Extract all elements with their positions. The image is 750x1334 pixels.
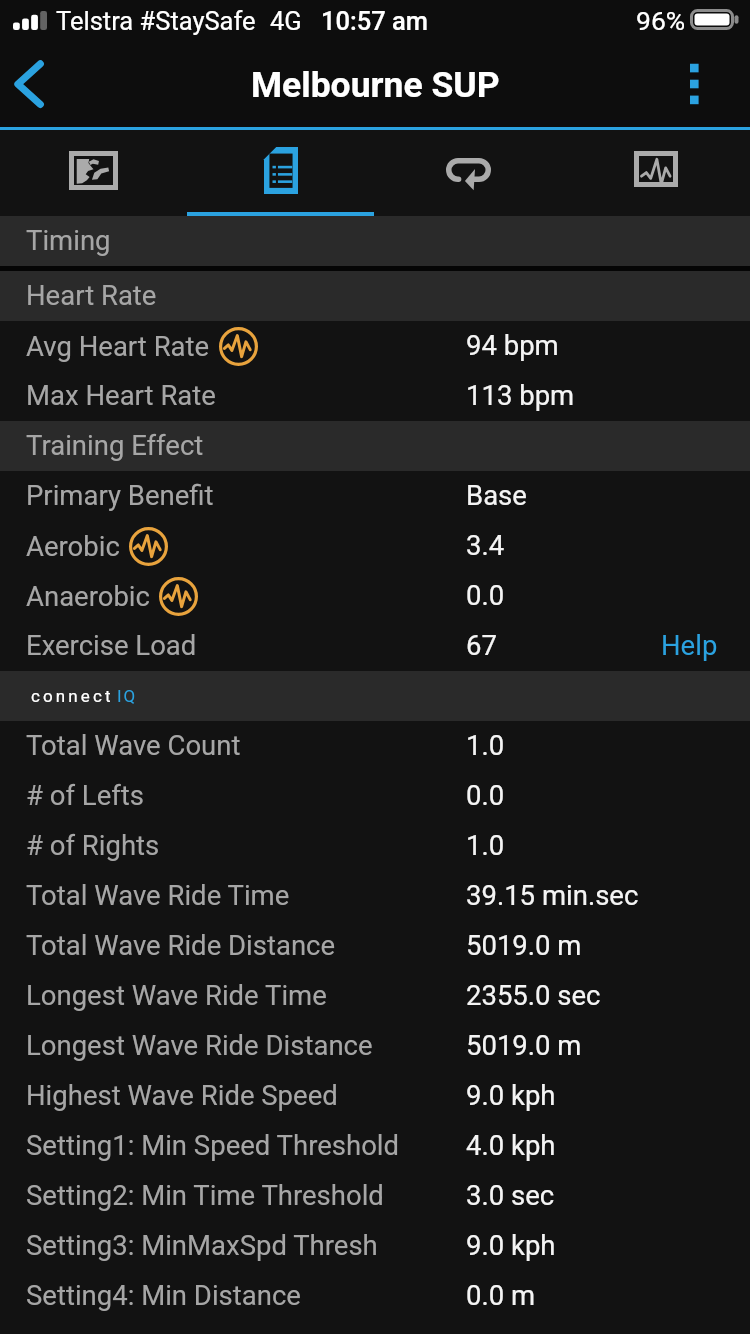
- button[interactable]: More options: [688, 50, 750, 127]
- staticText: Timing: [26, 224, 111, 256]
- staticText: Total Wave Count: [26, 729, 241, 761]
- staticText: Total Wave Ride Distance: [26, 929, 336, 961]
- staticText: Training Effect: [26, 429, 204, 461]
- button[interactable]: Primary Benefit: [0, 471, 750, 521]
- staticText: Aerobic: [26, 530, 120, 562]
- staticText: Exercise Load: [26, 629, 197, 661]
- button[interactable]: Aerobic: [0, 521, 750, 571]
- button[interactable]: # of Rights: [0, 821, 750, 871]
- staticText: 113 bpm: [466, 379, 575, 411]
- staticText: 9.0 kph: [466, 1229, 556, 1261]
- staticText: 67: [466, 629, 497, 661]
- staticText: Help: [661, 629, 718, 661]
- staticText: 5019.0 m: [466, 929, 582, 961]
- staticText: 4.0 kph: [466, 1129, 556, 1161]
- staticText: 3.4: [466, 529, 505, 561]
- button[interactable]: Max Heart Rate: [0, 371, 750, 421]
- button[interactable]: Longest Wave Ride Time: [0, 971, 750, 1021]
- button[interactable]: Back: [0, 50, 62, 127]
- button[interactable]: Total Wave Count: [0, 721, 750, 771]
- staticText: 10:57 am: [321, 6, 428, 36]
- staticText: 2355.0 sec: [466, 979, 601, 1011]
- staticText: Melbourne SUP: [251, 64, 500, 106]
- staticText: 5019.0 m: [466, 1029, 582, 1061]
- staticText: Heart Rate: [26, 279, 157, 311]
- staticText: 3.0 sec: [466, 1179, 555, 1211]
- staticText: Longest Wave Ride Distance: [26, 1029, 373, 1061]
- staticText: 0.0: [466, 779, 505, 811]
- button[interactable]: Setting4: Min Distance: [0, 1271, 750, 1321]
- staticText: 1.0: [466, 829, 505, 861]
- staticText: 94 bpm: [466, 329, 559, 361]
- button[interactable]: Laps: [374, 130, 562, 216]
- button[interactable]: Details: [187, 130, 374, 216]
- staticText: Longest Wave Ride Time: [26, 979, 327, 1011]
- staticText: 96%: [636, 5, 686, 36]
- staticText: # of Rights: [26, 829, 160, 861]
- staticText: Avg Heart Rate: [26, 330, 210, 362]
- button[interactable]: Setting1: Min Speed Threshold: [0, 1121, 750, 1171]
- staticText: # of Lefts: [26, 779, 144, 811]
- staticText: Setting1: Min Speed Threshold: [26, 1129, 400, 1161]
- staticText: Total Wave Ride Time: [26, 879, 290, 911]
- staticText: connect: [31, 686, 114, 706]
- button[interactable]: Longest Wave Ride Distance: [0, 1021, 750, 1071]
- staticText: 0.0: [466, 579, 505, 611]
- button[interactable]: Highest Wave Ride Speed: [0, 1071, 750, 1121]
- staticText: 4G: [270, 6, 302, 36]
- staticText: 39.15 min.sec: [466, 879, 639, 911]
- button[interactable]: # of Lefts: [0, 771, 750, 821]
- staticText: Setting4: Min Distance: [26, 1279, 301, 1311]
- button[interactable]: Avg Heart Rate: [0, 321, 750, 371]
- staticText: Base: [466, 479, 527, 511]
- staticText: Max Heart Rate: [26, 379, 216, 411]
- button[interactable]: Total Wave Ride Distance: [0, 921, 750, 971]
- staticText: IQ: [117, 686, 138, 706]
- staticText: Setting2: Min Time Threshold: [26, 1179, 384, 1211]
- staticText: Primary Benefit: [26, 479, 214, 511]
- staticText: 1.0: [466, 729, 505, 761]
- staticText: Setting3: MinMaxSpd Thresh: [26, 1229, 378, 1261]
- button[interactable]: Exercise Load: [0, 621, 750, 671]
- button[interactable]: Setting3: MinMaxSpd Thresh: [0, 1221, 750, 1271]
- staticText: 0.0 m: [466, 1279, 536, 1311]
- button[interactable]: Map: [0, 130, 187, 216]
- button[interactable]: Charts: [562, 130, 750, 216]
- button[interactable]: Total Wave Ride Time: [0, 871, 750, 921]
- staticText: 9.0 kph: [466, 1079, 556, 1111]
- staticText: Highest Wave Ride Speed: [26, 1079, 338, 1111]
- button[interactable]: Help: [0, 621, 750, 671]
- staticText: Telstra #StaySafe: [56, 6, 256, 36]
- button[interactable]: Anaerobic: [0, 571, 750, 621]
- staticText: Anaerobic: [26, 580, 150, 612]
- button[interactable]: Setting2: Min Time Threshold: [0, 1171, 750, 1221]
